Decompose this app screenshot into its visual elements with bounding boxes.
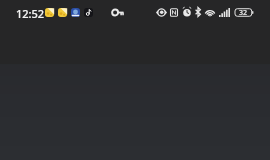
staticText: 32 [239,8,248,17]
staticText: 12:52 [16,6,45,21]
